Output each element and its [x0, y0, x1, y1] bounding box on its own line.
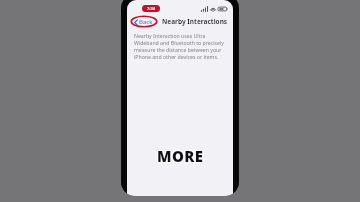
staticText: MORE	[158, 146, 205, 166]
staticText: MORE	[156, 145, 203, 165]
staticText: Nearby Interaction uses Ultra Wideband a…	[134, 32, 227, 60]
staticText: MORE	[157, 145, 204, 165]
staticText: Back	[139, 18, 153, 26]
staticText: 7:34	[147, 6, 155, 11]
staticText: MORE	[158, 145, 205, 165]
staticText: MORE	[158, 147, 205, 167]
staticText: MORE	[156, 147, 203, 167]
staticText: MORE	[156, 146, 203, 166]
staticText: MORE	[157, 146, 204, 166]
staticText: MORE	[157, 147, 204, 167]
button[interactable]: Back	[133, 17, 154, 27]
staticText: Nearby Interactions	[162, 17, 228, 26]
